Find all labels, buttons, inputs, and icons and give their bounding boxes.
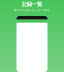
staticText: 毎日の記録をまとめて確認 xyxy=(14,9,50,12)
staticText: 記録一覧 xyxy=(22,1,42,8)
